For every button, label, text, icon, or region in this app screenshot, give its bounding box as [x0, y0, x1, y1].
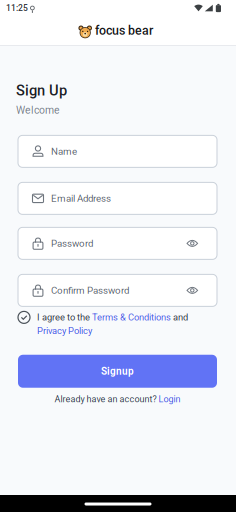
button[interactable]: Terms & Conditions: [92, 312, 171, 323]
staticText: Privacy Policy: [37, 325, 92, 336]
staticText: 11:25: [6, 3, 28, 13]
button[interactable]: Show password: [183, 283, 202, 298]
staticText: Welcome: [16, 104, 60, 116]
staticText: Signup: [101, 365, 134, 377]
staticText: Already have an account?: [54, 394, 158, 404]
staticText: I agree to the: [37, 312, 92, 323]
staticText: Login: [158, 394, 180, 404]
button[interactable]: Privacy Policy: [37, 325, 92, 336]
button[interactable]: Signup: [18, 355, 217, 388]
staticText: Terms & Conditions: [92, 312, 171, 323]
button[interactable]: I agree: [18, 311, 30, 323]
staticText: Sign Up: [16, 82, 67, 99]
button[interactable]: Show password: [183, 236, 202, 251]
staticText: and: [171, 312, 188, 323]
staticText: Confirm Password: [51, 285, 129, 296]
staticText: Password: [51, 238, 93, 249]
staticText: Name: [51, 146, 77, 157]
button[interactable]: Login: [158, 394, 180, 404]
staticText: Email Address: [51, 193, 111, 204]
staticText: focus bear: [95, 23, 153, 38]
